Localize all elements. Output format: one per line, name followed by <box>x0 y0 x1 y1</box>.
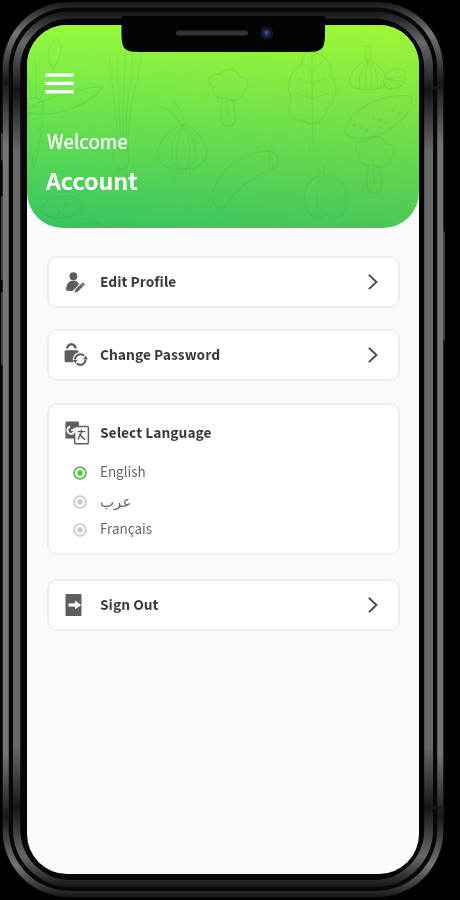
staticText: Select Language <box>100 422 212 444</box>
staticText: Change Password <box>100 344 221 366</box>
button[interactable]: English <box>59 460 259 485</box>
button[interactable]: Change Password <box>47 329 400 381</box>
button[interactable]: Français <box>59 517 259 542</box>
staticText: عرب <box>100 493 132 510</box>
staticText: Français <box>100 519 152 540</box>
button[interactable]: عرب <box>59 489 259 514</box>
staticText: Account <box>46 163 138 201</box>
button[interactable]: Sign Out <box>47 579 400 631</box>
staticText: Sign Out <box>100 594 159 616</box>
button[interactable]: Open navigation menu <box>43 70 75 94</box>
staticText: Welcome <box>47 127 128 157</box>
staticText: English <box>100 462 146 483</box>
staticText: Edit Profile <box>100 271 177 293</box>
button[interactable]: Edit Profile <box>47 256 400 308</box>
